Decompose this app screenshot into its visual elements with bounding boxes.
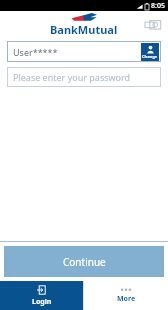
- button[interactable]: User*****: [7, 41, 161, 62]
- button[interactable]: Rates: [142, 14, 164, 36]
- staticText: 8:05: [151, 1, 165, 11]
- button[interactable]: Please enter your password: [7, 67, 161, 87]
- button[interactable]: Login: [0, 281, 83, 310]
- button[interactable]: More: [84, 281, 168, 310]
- staticText: User*****: [13, 46, 58, 58]
- staticText: BankMutual: [50, 22, 118, 37]
- staticText: Login: [32, 297, 52, 307]
- button[interactable]: Continue: [4, 246, 164, 277]
- staticText: Please enter your password: [13, 71, 131, 83]
- staticText: Continue: [63, 255, 106, 269]
- staticText: More: [117, 294, 136, 304]
- button[interactable]: Change user: [141, 43, 159, 61]
- staticText: Change: [142, 54, 158, 59]
